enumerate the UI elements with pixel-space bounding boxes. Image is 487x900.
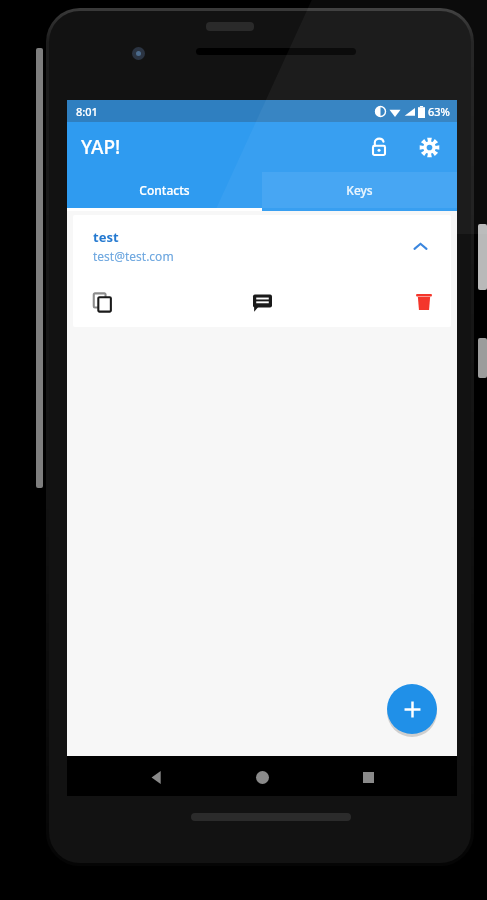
staticText: YAP! xyxy=(81,134,121,160)
button[interactable]: Contacts xyxy=(67,172,262,208)
button[interactable]: Message xyxy=(199,277,325,327)
staticText: test xyxy=(93,228,119,246)
button[interactable]: Settings xyxy=(412,130,446,164)
button[interactable]: Delete xyxy=(325,277,451,327)
button[interactable]: Copy xyxy=(73,277,199,327)
staticText: 63% xyxy=(428,104,450,119)
button[interactable]: Collapse xyxy=(405,231,435,261)
staticText: Contacts xyxy=(139,182,190,198)
button[interactable]: test xyxy=(73,215,451,327)
staticText: Keys xyxy=(346,182,373,198)
button[interactable]: Recents xyxy=(351,760,385,794)
staticText: 8:01 xyxy=(76,104,98,119)
button[interactable]: Add contact xyxy=(387,684,437,734)
button[interactable]: Home xyxy=(245,760,279,794)
button[interactable]: Back xyxy=(139,760,173,794)
staticText: test@test.com xyxy=(93,248,174,264)
button[interactable]: Unlock xyxy=(362,130,396,164)
button[interactable]: Keys xyxy=(262,172,457,208)
